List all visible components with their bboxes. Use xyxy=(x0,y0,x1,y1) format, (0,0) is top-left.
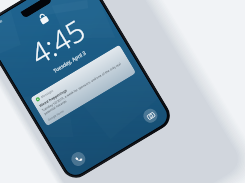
button[interactable]: Camera xyxy=(141,106,160,125)
button[interactable]: Phone xyxy=(69,149,88,169)
staticText: Tuesday, April 3 xyxy=(52,50,87,75)
staticText: Google Home xyxy=(47,109,65,122)
staticText: 4:45 xyxy=(23,10,92,73)
staticText: Messages xyxy=(40,88,54,99)
button[interactable]: Messages xyxy=(30,45,136,126)
staticText: Weird happenings xyxy=(38,87,68,108)
staticText: Tuesday Y2/2019, a week for sponsors, an… xyxy=(41,59,128,116)
staticText: Verizon xyxy=(0,19,3,28)
